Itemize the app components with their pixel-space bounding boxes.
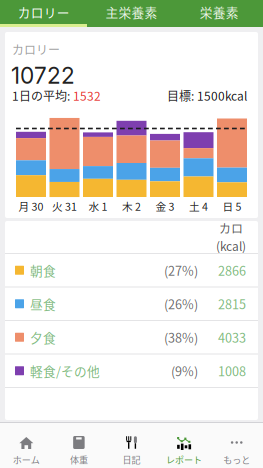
staticText: (27%)	[164, 261, 198, 279]
staticText: 栄養素	[200, 3, 239, 21]
staticText: 土 4	[189, 198, 208, 214]
staticText: 日記	[122, 453, 140, 466]
staticText: カロリー	[18, 3, 70, 21]
staticText: もっと	[223, 453, 250, 466]
staticText: (38%)	[164, 328, 198, 346]
staticText: 目標: 1500kcal	[167, 87, 247, 104]
button[interactable]: 軽食/その他	[5, 354, 258, 387]
staticText: (kcal)	[216, 237, 246, 254]
staticText: 1008	[218, 362, 246, 380]
staticText: レポート	[166, 453, 202, 466]
staticText: 月 30	[18, 198, 43, 214]
staticText: 昼食	[30, 295, 56, 313]
staticText: 日 5	[222, 198, 241, 214]
staticText: 1日の平均:	[12, 87, 73, 104]
button[interactable]: ホーム	[0, 423, 53, 468]
button[interactable]: 日記	[105, 423, 158, 468]
staticText: 木 2	[122, 198, 141, 214]
button[interactable]: レポート	[158, 423, 210, 468]
staticText: 2866	[218, 261, 246, 279]
button[interactable]: 朝食	[5, 254, 258, 286]
staticText: 1532	[73, 87, 101, 104]
button[interactable]: 昼食	[5, 287, 258, 320]
staticText: 10722	[11, 62, 75, 89]
button[interactable]: もっと	[210, 423, 263, 468]
staticText: 火 31	[52, 198, 77, 214]
staticText: 夕食	[30, 328, 56, 346]
staticText: 軽食/その他	[30, 362, 100, 380]
staticText: (26%)	[164, 295, 198, 313]
staticText: 体重	[70, 453, 88, 466]
staticText: 主栄養素	[105, 3, 157, 21]
staticText: 水 1	[88, 198, 107, 214]
staticText: 2815	[218, 295, 246, 313]
staticText: ホーム	[13, 453, 40, 466]
staticText: 4033	[218, 328, 246, 346]
staticText: 朝食	[30, 261, 56, 279]
button[interactable]: カロリー	[0, 0, 88, 24]
staticText: (9%)	[171, 362, 198, 380]
button[interactable]: 主栄養素	[88, 0, 175, 24]
button[interactable]: 体重	[53, 423, 105, 468]
staticText: 金 3	[155, 198, 174, 214]
button[interactable]: 夕食	[5, 321, 258, 353]
staticText: カロ	[219, 220, 243, 237]
staticText: カロリー	[12, 41, 60, 58]
button[interactable]: 栄養素	[175, 0, 263, 24]
